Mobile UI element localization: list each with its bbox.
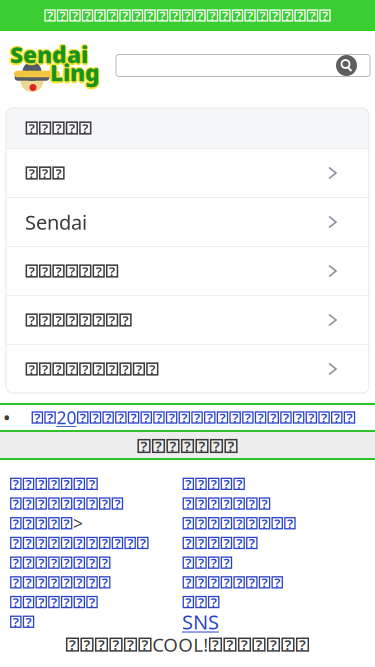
staticText: ? — [13, 593, 19, 611]
staticText: ? — [198, 593, 204, 611]
button[interactable]: ? — [6, 149, 369, 197]
staticText: ? — [114, 534, 120, 552]
staticText: Sendai — [12, 40, 90, 70]
staticText: ? — [89, 475, 95, 493]
button[interactable]: ? — [9, 494, 182, 513]
staticText: ? — [127, 635, 134, 654]
staticText: ? — [236, 573, 242, 591]
staticText: ? — [69, 360, 75, 378]
staticText: ? — [184, 436, 191, 456]
staticText: ? — [89, 593, 95, 611]
button[interactable]: ? — [9, 553, 182, 572]
staticText: ? — [223, 495, 229, 512]
staticText: ? — [76, 534, 82, 552]
button[interactable]: SNS — [182, 612, 296, 632]
staticText: ? — [89, 554, 95, 571]
button[interactable]: ? — [9, 572, 182, 592]
staticText: ? — [283, 409, 289, 426]
staticText: ? — [13, 514, 19, 532]
staticText: ? — [84, 7, 90, 24]
staticText: ? — [255, 635, 262, 654]
button[interactable]: ? — [182, 513, 296, 533]
staticText: ? — [47, 7, 53, 24]
staticText: ? — [102, 495, 108, 512]
button[interactable]: • — [0, 405, 375, 430]
staticText: ? — [55, 262, 61, 280]
staticText: ? — [55, 311, 61, 329]
button[interactable]: Search — [116, 54, 370, 76]
staticText: ? — [97, 7, 103, 24]
staticText: ? — [38, 554, 44, 571]
staticText: ? — [38, 534, 44, 552]
button[interactable]: ? — [182, 553, 296, 572]
button[interactable]: ? — [6, 296, 369, 344]
staticText: ? — [185, 593, 191, 611]
staticText: ? — [185, 475, 191, 493]
button[interactable]: ? — [9, 533, 182, 553]
staticText: ? — [223, 534, 229, 552]
staticText: ? — [51, 554, 57, 571]
staticText: ? — [122, 311, 128, 329]
staticText: ? — [222, 7, 228, 24]
staticText: ? — [149, 360, 155, 378]
staticText: ? — [38, 573, 44, 591]
staticText: ? — [131, 409, 137, 426]
staticText: ? — [197, 7, 203, 24]
button[interactable]: ? — [9, 513, 182, 533]
staticText: ? — [198, 534, 204, 552]
staticText: ? — [38, 475, 44, 493]
staticText: ? — [245, 409, 251, 426]
staticText: ? — [13, 495, 19, 512]
staticText: ? — [185, 514, 191, 532]
staticText: ? — [284, 7, 290, 24]
staticText: ? — [59, 7, 65, 24]
button[interactable]: ? — [182, 533, 296, 553]
button[interactable]: ? — [6, 345, 369, 393]
staticText: ? — [198, 495, 204, 512]
button[interactable]: Sendai — [6, 198, 369, 246]
button[interactable]: ? — [9, 592, 182, 612]
staticText: ? — [169, 409, 175, 426]
staticText: ? — [134, 7, 140, 24]
staticText: ? — [122, 360, 128, 378]
button[interactable]: ? — [182, 494, 296, 513]
staticText: ? — [13, 554, 19, 571]
staticText: ? — [211, 554, 217, 571]
staticText: ? — [223, 514, 229, 532]
staticText: Sendai — [11, 41, 89, 71]
staticText: ? — [29, 119, 35, 137]
button[interactable]: ? — [182, 592, 296, 612]
button[interactable]: ? — [6, 247, 369, 295]
staticText: ? — [76, 475, 82, 493]
staticText: ? — [102, 534, 108, 552]
button[interactable]: ? — [9, 474, 182, 494]
staticText: ? — [55, 360, 61, 378]
staticText: ? — [105, 409, 111, 426]
staticText: ? — [109, 311, 115, 329]
staticText: ? — [64, 554, 70, 571]
staticText: ? — [76, 593, 82, 611]
staticText: ? — [96, 360, 102, 378]
staticText: Sendai — [9, 39, 87, 70]
staticText: 20 — [56, 406, 76, 429]
staticText: ? — [261, 495, 267, 512]
staticText: ? — [241, 635, 248, 654]
staticText: ? — [96, 311, 102, 329]
button[interactable]: ? — [182, 572, 296, 592]
staticText: ? — [308, 409, 314, 426]
staticText: ? — [261, 514, 267, 532]
staticText: ? — [122, 7, 128, 24]
button[interactable]: ? — [9, 612, 182, 632]
staticText: ? — [185, 573, 191, 591]
staticText: ? — [287, 514, 293, 532]
staticText: ? — [226, 635, 233, 654]
staticText: ? — [96, 262, 102, 280]
staticText: ? — [25, 475, 31, 493]
staticText: ? — [29, 311, 35, 329]
staticText: ? — [198, 514, 204, 532]
staticText: ? — [296, 409, 302, 426]
staticText: ? — [140, 534, 146, 552]
button[interactable]: ? — [182, 474, 296, 494]
staticText: ? — [25, 613, 31, 631]
staticText: ? — [118, 409, 124, 426]
